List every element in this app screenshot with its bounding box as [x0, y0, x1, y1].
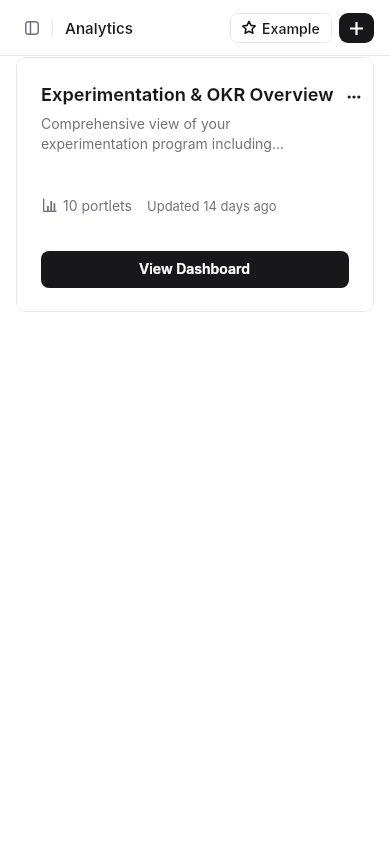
- button[interactable]: More options: [342, 85, 366, 109]
- button[interactable]: View Dashboard: [41, 251, 349, 288]
- staticText: Analytics: [65, 19, 134, 37]
- staticText: View Dashboard: [139, 260, 251, 277]
- staticText: 10 portlets: [63, 197, 132, 214]
- staticText: Comprehensive view of your experimentati…: [41, 113, 291, 153]
- staticText: Experimentation & OKR Overview: [41, 84, 334, 106]
- button[interactable]: Add new: [339, 13, 374, 43]
- staticText: Example: [262, 20, 320, 37]
- staticText: Updated 14 days ago: [147, 198, 277, 214]
- button[interactable]: Toggle sidebar: [16, 12, 48, 44]
- button[interactable]: Example: [230, 13, 332, 43]
